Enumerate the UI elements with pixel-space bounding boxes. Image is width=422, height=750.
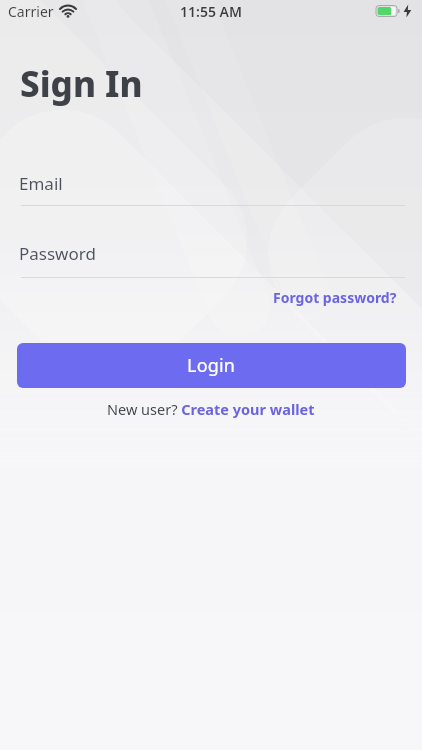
staticText: Email (19, 172, 63, 195)
staticText: Password (19, 242, 96, 265)
staticText: 11:55 AM (180, 2, 242, 21)
button[interactable]: Forgot password? (273, 288, 397, 307)
button[interactable]: Login (17, 343, 406, 388)
button[interactable]: Email (19, 166, 405, 206)
button[interactable]: Password (19, 236, 405, 278)
staticText: Carrier (8, 2, 54, 21)
button[interactable]: New user? Create your wallet (107, 399, 315, 419)
staticText: Sign In (20, 60, 143, 108)
staticText: Login (187, 353, 236, 378)
